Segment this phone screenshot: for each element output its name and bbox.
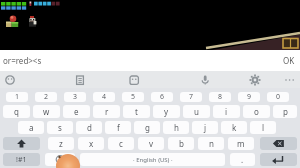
button[interactable]: f [105, 121, 131, 134]
button[interactable] [260, 153, 297, 166]
button[interactable] [74, 74, 86, 86]
button[interactable]: 9 [238, 92, 260, 102]
staticText: x [89, 138, 94, 149]
staticText: . [241, 154, 244, 165]
staticText: y [164, 106, 169, 117]
button[interactable]: e [63, 105, 90, 118]
staticText: l [262, 122, 265, 133]
staticText: OK [283, 55, 295, 66]
staticText: r [105, 106, 109, 117]
staticText: · English (US) · [133, 156, 173, 164]
button[interactable]: d [76, 121, 102, 134]
staticText: s [58, 122, 62, 133]
button[interactable]: a [18, 121, 44, 134]
staticText: p [283, 106, 288, 117]
button[interactable]: s [47, 121, 73, 134]
button[interactable]: 1 [6, 92, 28, 102]
button[interactable]: · English (US) · [80, 153, 225, 166]
staticText: u [194, 106, 199, 117]
staticText: 3 [73, 92, 78, 102]
button[interactable]: 7 [180, 92, 202, 102]
staticText: 9 [247, 92, 252, 102]
staticText: 2 [44, 92, 49, 102]
staticText: m [237, 138, 245, 149]
button[interactable]: o [243, 105, 270, 118]
staticText: h [174, 122, 179, 133]
staticText: e [74, 106, 79, 117]
button[interactable]: i [213, 105, 240, 118]
staticText: t [135, 106, 138, 117]
button[interactable]: j [192, 121, 218, 134]
button[interactable]: y [153, 105, 180, 118]
staticText: 1 [15, 92, 20, 102]
button[interactable] [283, 74, 297, 88]
button[interactable]: p [273, 105, 297, 118]
button[interactable]: c [108, 137, 134, 150]
button[interactable]: h [163, 121, 189, 134]
staticText: f [117, 122, 120, 133]
button[interactable]: !#1 [3, 153, 40, 166]
button[interactable] [260, 137, 297, 150]
button[interactable]: 3 [64, 92, 86, 102]
staticText: 8 [218, 92, 223, 102]
staticText: j [204, 122, 207, 133]
button[interactable]: z [48, 137, 74, 150]
staticText: 0 [276, 92, 281, 102]
button[interactable] [45, 153, 75, 166]
button[interactable]: x [78, 137, 104, 150]
button[interactable]: . [230, 153, 255, 166]
staticText: 5 [131, 92, 136, 102]
button[interactable]: g [134, 121, 160, 134]
button[interactable] [199, 74, 211, 86]
button[interactable] [128, 74, 140, 86]
button[interactable]: 6 [151, 92, 173, 102]
button[interactable]: 0 [267, 92, 289, 102]
staticText: or=red><s [3, 55, 42, 66]
button[interactable]: 4 [93, 92, 115, 102]
staticText: b [179, 138, 184, 149]
staticText: w [43, 106, 50, 117]
button[interactable]: b [168, 137, 194, 150]
button[interactable]: 5 [122, 92, 144, 102]
button[interactable] [249, 74, 261, 86]
button[interactable]: q [3, 105, 30, 118]
staticText: k [232, 122, 237, 133]
staticText: d [87, 122, 92, 133]
staticText: 4 [102, 92, 107, 102]
button[interactable]: k [221, 121, 247, 134]
button[interactable]: OK [278, 52, 300, 69]
staticText: a [29, 122, 34, 133]
staticText: q [14, 106, 19, 117]
button[interactable]: 8 [209, 92, 231, 102]
staticText: !#1 [16, 155, 27, 165]
staticText: g [145, 122, 150, 133]
button[interactable]: 2 [35, 92, 57, 102]
staticText: n [209, 138, 214, 149]
staticText: v [149, 138, 154, 149]
button[interactable]: m [228, 137, 254, 150]
staticText: i [225, 106, 228, 117]
button[interactable]: v [138, 137, 164, 150]
button[interactable]: r [93, 105, 120, 118]
button[interactable]: l [250, 121, 276, 134]
button[interactable]: u [183, 105, 210, 118]
staticText: z [59, 138, 63, 149]
staticText: 6 [160, 92, 165, 102]
button[interactable] [4, 74, 16, 86]
button[interactable] [3, 137, 40, 150]
staticText: o [254, 106, 259, 117]
staticText: 7 [189, 92, 194, 102]
button[interactable]: n [198, 137, 224, 150]
button[interactable]: t [123, 105, 150, 118]
button[interactable]: w [33, 105, 60, 118]
staticText: c [119, 138, 123, 149]
